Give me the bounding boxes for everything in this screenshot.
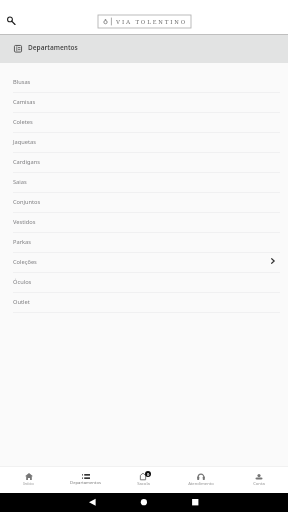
- staticText: Jaquetas: [13, 138, 36, 146]
- button[interactable]: Jaquetas: [0, 133, 288, 153]
- staticText: Departamentos: [28, 43, 78, 52]
- button[interactable]: Início: [0, 467, 57, 493]
- button[interactable]: Parkas: [0, 233, 288, 253]
- button[interactable]: Outlet: [0, 293, 288, 313]
- button[interactable]: 0: [114, 467, 172, 493]
- staticText: Saias: [13, 178, 27, 186]
- staticText: Departamentos: [70, 480, 101, 486]
- staticText: 0: [147, 472, 150, 477]
- button[interactable]: Blusas: [0, 73, 288, 93]
- staticText: Atendimento: [188, 481, 214, 487]
- staticText: Conta: [253, 481, 265, 487]
- button[interactable]: Conta: [230, 467, 288, 493]
- staticText: Coleções: [13, 258, 37, 266]
- button[interactable]: Buscar: [2, 11, 20, 29]
- button[interactable]: Vestidos: [0, 213, 288, 233]
- button[interactable]: Conjuntos: [0, 193, 288, 213]
- staticText: Conjuntos: [13, 198, 41, 206]
- staticText: Coletes: [13, 118, 33, 126]
- button[interactable]: Coletes: [0, 113, 288, 133]
- button[interactable]: Cardigans: [0, 153, 288, 173]
- button[interactable]: Óculos: [0, 273, 288, 293]
- staticText: Outlet: [13, 298, 30, 306]
- button[interactable]: Saias: [0, 173, 288, 193]
- staticText: Parkas: [13, 238, 31, 246]
- staticText: Camisas: [13, 98, 36, 106]
- button[interactable]: Departamentos: [57, 467, 114, 493]
- button[interactable]: Coleções: [0, 253, 288, 273]
- staticText: Óculos: [13, 278, 32, 286]
- staticText: Início: [23, 481, 34, 487]
- staticText: Vestidos: [13, 218, 36, 226]
- button[interactable]: Camisas: [0, 93, 288, 113]
- button[interactable]: Atendimento: [172, 467, 230, 493]
- button[interactable]: Via Tolentino: [98, 15, 191, 28]
- staticText: Blusas: [13, 78, 31, 86]
- staticText: Cardigans: [13, 158, 40, 166]
- staticText: Sacola: [137, 481, 150, 487]
- staticText: VIA TOLENTINO: [116, 18, 188, 26]
